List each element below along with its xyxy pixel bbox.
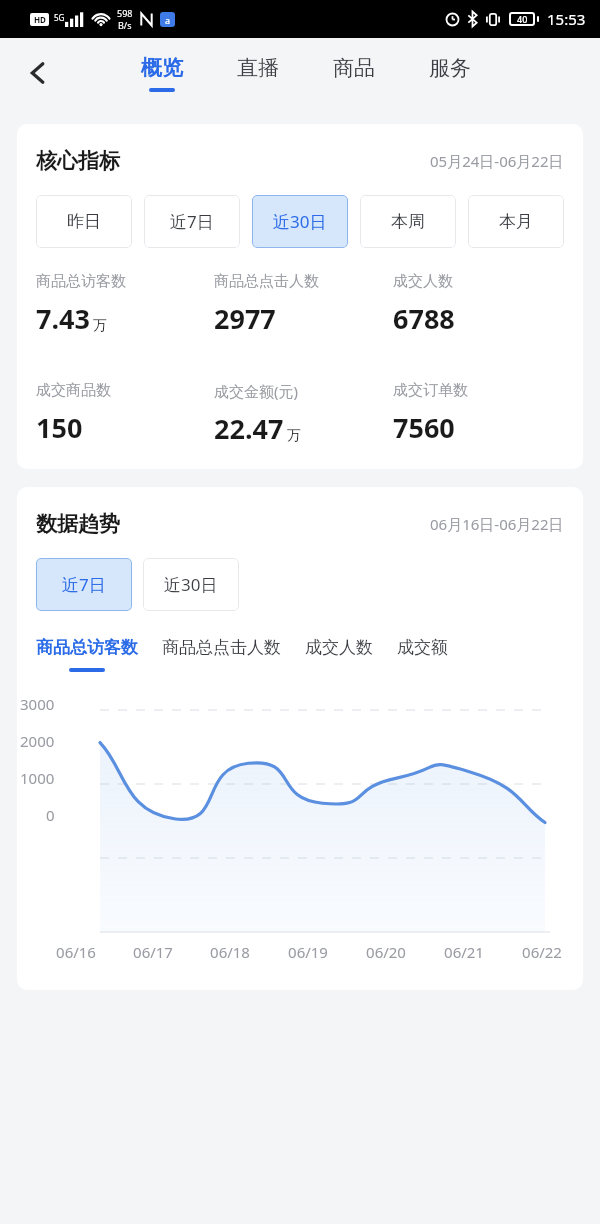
staticText: 06/22 (522, 942, 562, 962)
button[interactable]: 本周 (360, 195, 456, 248)
staticText: 2977 (214, 300, 276, 337)
staticText: 06/19 (288, 942, 328, 962)
staticText: 6788 (393, 300, 455, 337)
button[interactable]: 近30日 (252, 195, 348, 248)
staticText: 万 (287, 427, 301, 445)
staticText: 150 (36, 409, 83, 446)
staticText: 5G (54, 12, 65, 23)
staticText: 昨日 (67, 211, 101, 232)
button[interactable]: 成交人数 (305, 637, 373, 672)
staticText: 3000 (20, 694, 55, 714)
staticText: 598 (117, 7, 133, 19)
button[interactable]: 本月 (468, 195, 564, 248)
staticText: 本月 (499, 211, 533, 232)
button[interactable]: Back (16, 51, 60, 95)
staticText: 商品总点击人数 (162, 637, 281, 658)
button[interactable]: 商品总点击人数 (162, 637, 281, 672)
staticText: 7560 (393, 409, 455, 446)
staticText: 05月24日-06月22日 (430, 151, 564, 171)
staticText: 服务 (429, 55, 471, 81)
staticText: 06/17 (133, 942, 173, 962)
staticText: 15:53 (547, 9, 586, 29)
staticText: 22.47 (214, 410, 284, 447)
staticText: 06/21 (444, 942, 484, 962)
staticText: 商品总点击人数 (214, 272, 319, 291)
staticText: 06/18 (210, 942, 250, 962)
staticText: 06月16日-06月22日 (430, 514, 564, 534)
button[interactable]: 昨日 (36, 195, 132, 248)
staticText: 直播 (237, 55, 279, 81)
button[interactable]: 商品 (306, 38, 402, 108)
button[interactable]: 概览 (114, 38, 210, 108)
staticText: 近7日 (62, 573, 106, 596)
staticText: 40 (517, 13, 528, 25)
button[interactable]: 近7日 (36, 558, 132, 611)
staticText: 7.43 (36, 300, 90, 337)
staticText: 近7日 (170, 210, 214, 233)
staticText: 近30日 (164, 573, 218, 596)
button[interactable]: 直播 (210, 38, 306, 108)
staticText: 商品总访客数 (36, 272, 126, 291)
button[interactable]: 商品总访客数 (36, 637, 138, 672)
staticText: 本周 (391, 211, 425, 232)
staticText: 成交商品数 (36, 381, 111, 400)
staticText: 数据趋势 (36, 511, 120, 537)
button[interactable]: 近30日 (143, 558, 239, 611)
staticText: 2000 (20, 731, 55, 751)
staticText: 06/16 (56, 942, 96, 962)
staticText: a (165, 14, 171, 26)
staticText: 商品 (333, 55, 375, 81)
staticText: 06/20 (366, 942, 406, 962)
staticText: 近30日 (273, 210, 327, 233)
staticText: 概览 (141, 55, 183, 81)
staticText: 万 (93, 317, 107, 335)
staticText: 成交人数 (305, 637, 373, 658)
button[interactable]: 成交额 (397, 637, 448, 672)
staticText: 1000 (20, 768, 55, 788)
staticText: HD (34, 14, 46, 25)
staticText: 成交人数 (393, 272, 453, 291)
staticText: 成交额 (397, 637, 448, 658)
staticText: B/s (118, 19, 132, 31)
staticText: 商品总访客数 (36, 637, 138, 658)
staticText: 成交订单数 (393, 381, 468, 400)
button[interactable]: 近7日 (144, 195, 240, 248)
staticText: 0 (46, 805, 55, 825)
button[interactable]: 服务 (402, 38, 498, 108)
staticText: 核心指标 (36, 148, 120, 174)
staticText: 成交金额(元) (214, 381, 299, 401)
